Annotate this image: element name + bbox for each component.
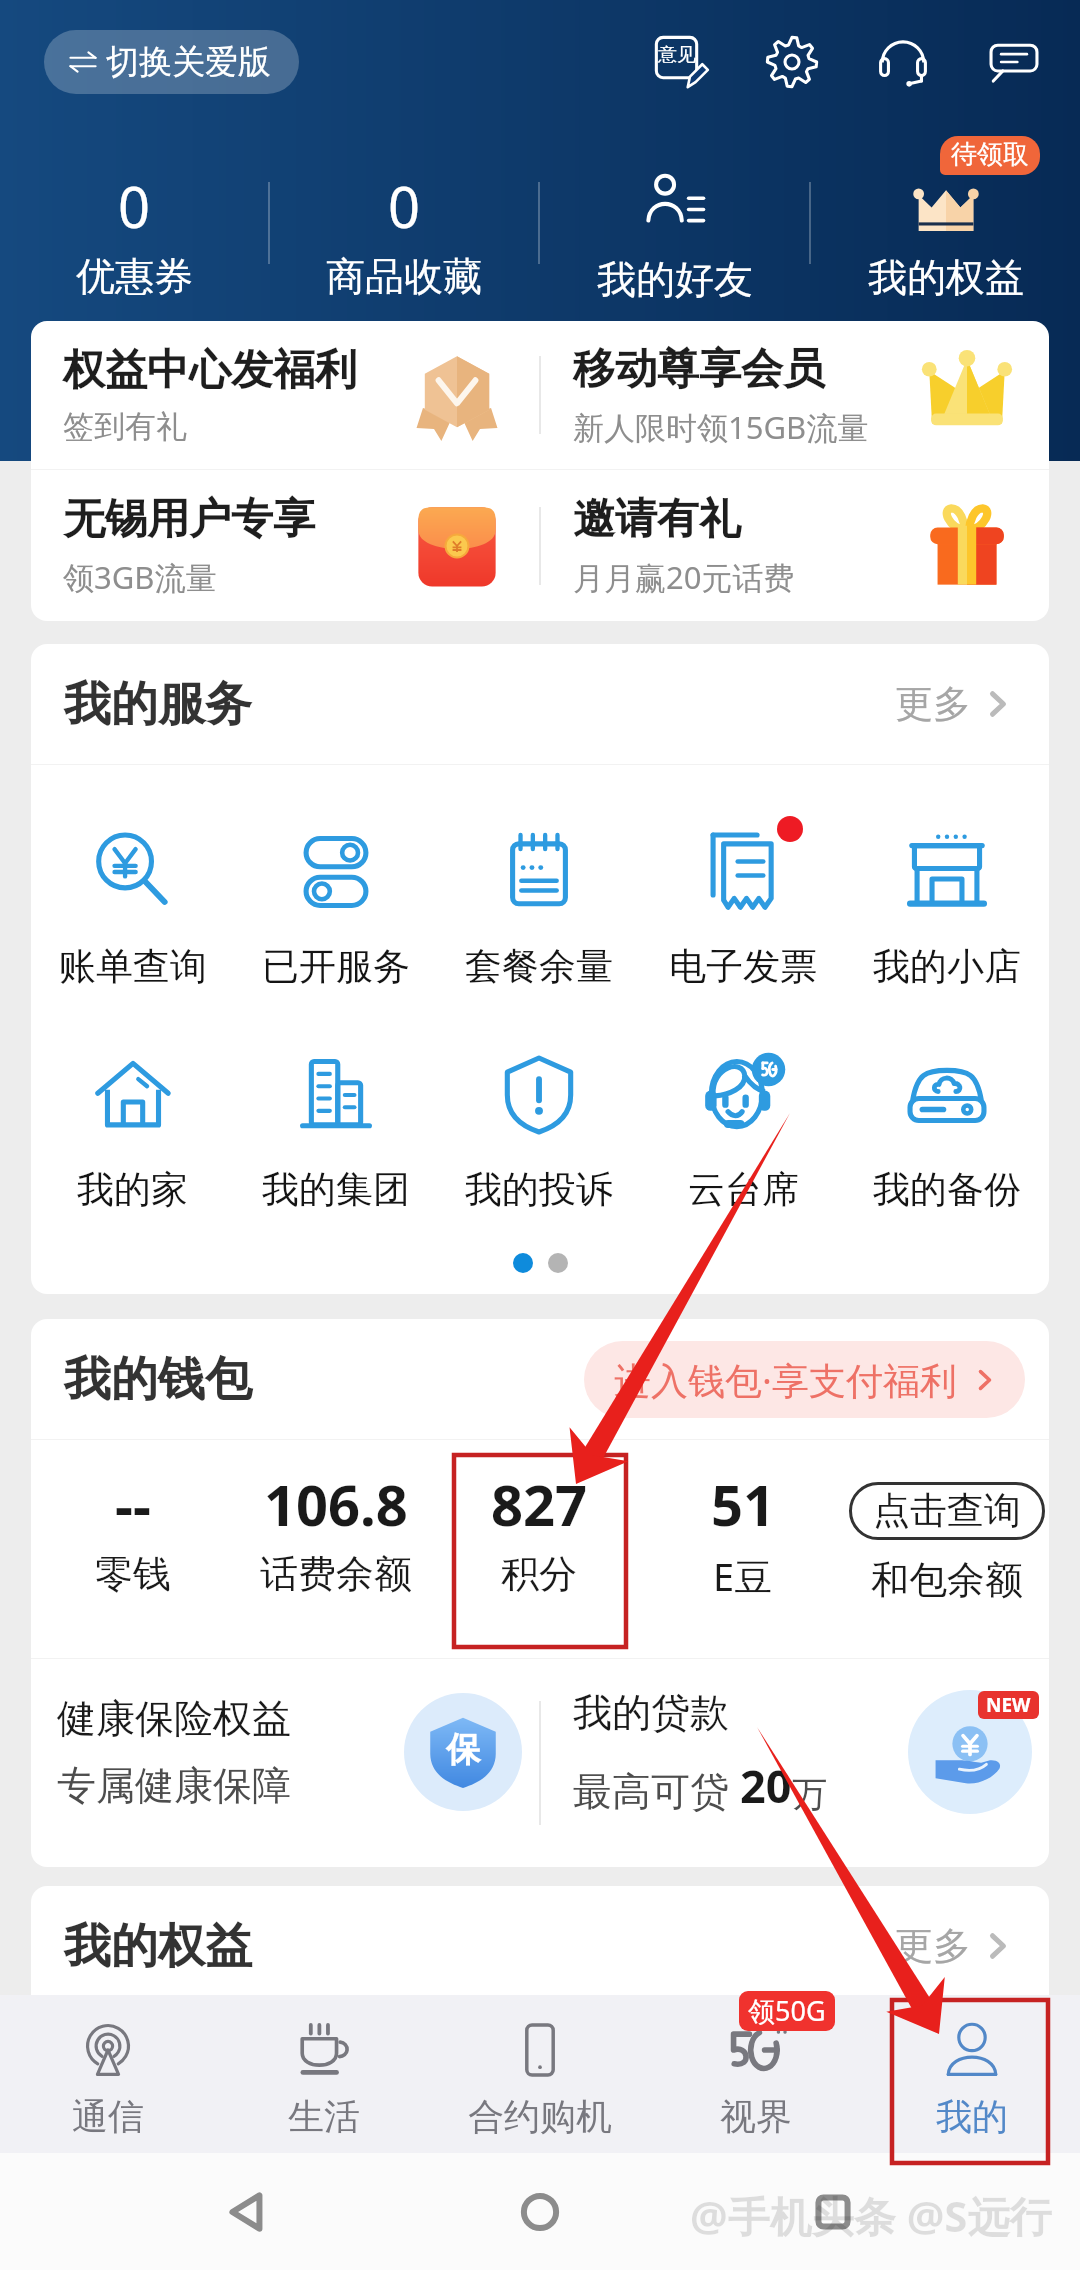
button[interactable]: 移动尊享会员 — [541, 321, 1049, 469]
staticText: 827 — [491, 1466, 588, 1542]
staticText: 我的钱包 — [64, 1350, 252, 1409]
staticText: 商品收藏 — [326, 252, 482, 301]
button[interactable]: 客服 — [874, 33, 932, 91]
staticText: 账单查询 — [59, 943, 207, 990]
button[interactable]: 已开服务 — [234, 828, 437, 990]
button[interactable]: 意见反馈 — [652, 33, 710, 91]
button[interactable]: 电子发票 — [641, 828, 845, 990]
staticText: 月月赢20元话费 — [573, 556, 795, 598]
button[interactable]: 更多 — [887, 1914, 1023, 1978]
staticText: 最高可贷 — [573, 1763, 740, 1816]
button[interactable]: 最近任务 — [788, 2167, 878, 2257]
button[interactable]: 827 — [437, 1440, 641, 1598]
staticText: 待领取 — [951, 138, 1029, 171]
staticText: 意见 — [658, 43, 696, 67]
staticText: 生活 — [288, 2094, 360, 2139]
staticText: 健康保险权益 — [57, 1694, 291, 1743]
staticText: 优惠券 — [76, 252, 193, 301]
staticText: 0 — [118, 168, 151, 244]
button[interactable]: 邀请有礼 — [541, 470, 1049, 621]
button[interactable]: 设置 — [763, 33, 821, 91]
staticText: 进入钱包·享支付福利 — [614, 1354, 957, 1405]
staticText: 已开服务 — [262, 943, 410, 990]
staticText: 万 — [792, 1772, 827, 1816]
staticText: 51 — [711, 1466, 776, 1542]
button[interactable]: 无锡用户专享 — [31, 470, 539, 621]
staticText: 20 — [740, 1755, 792, 1816]
staticText: 我的 — [936, 2094, 1008, 2139]
staticText: 新人限时领15GB流量 — [573, 406, 869, 448]
staticText: 套餐余量 — [465, 943, 613, 990]
staticText: 我的投诉 — [465, 1166, 613, 1213]
staticText: 邀请有礼 — [573, 493, 741, 546]
staticText: 我的权益 — [868, 253, 1024, 302]
button[interactable]: 切换关爱版 — [44, 30, 299, 94]
staticText: 更多 — [895, 1922, 971, 1970]
staticText: 无锡用户专享 — [63, 493, 315, 546]
button[interactable]: 套餐余量 — [437, 828, 641, 990]
staticText: 积分 — [501, 1550, 577, 1598]
button[interactable]: 更多 — [887, 672, 1023, 736]
button[interactable]: 主页 — [495, 2167, 585, 2257]
button[interactable]: 健康保险权益 — [31, 1659, 539, 1867]
staticText: 领50G — [748, 1992, 826, 2029]
staticText: 合约购机 — [468, 2094, 612, 2139]
button[interactable]: 云台席 — [641, 1051, 845, 1213]
staticText: @手机头条 @S远行 — [690, 2187, 1052, 2244]
button[interactable]: 我的贷款 — [541, 1659, 1049, 1867]
button[interactable]: 51 — [641, 1440, 845, 1602]
staticText: 领3GB流量 — [63, 556, 217, 598]
staticText: 我的好友 — [597, 255, 753, 304]
button[interactable]: 通信 — [0, 1995, 216, 2153]
staticText: 0 — [388, 168, 421, 244]
staticText: 我的集团 — [262, 1166, 410, 1213]
staticText: -- — [115, 1466, 151, 1542]
staticText: 电子发票 — [669, 943, 817, 990]
staticText: 我的小店 — [873, 943, 1021, 990]
staticText: 我的权益 — [64, 1917, 252, 1976]
staticText: 我的贷款 — [573, 1688, 729, 1737]
button[interactable]: 我的备份 — [845, 1051, 1049, 1213]
button[interactable]: 领50G — [648, 1995, 864, 2153]
button[interactable]: -- — [31, 1440, 234, 1598]
staticText: 零钱 — [95, 1550, 171, 1598]
staticText: 权益中心发福利 — [63, 344, 357, 397]
staticText: 话费余额 — [260, 1550, 412, 1598]
button[interactable]: 我的投诉 — [437, 1051, 641, 1213]
button[interactable]: 生活 — [216, 1995, 432, 2153]
staticText: 视界 — [720, 2094, 792, 2139]
staticText: 我的服务 — [64, 675, 252, 734]
button[interactable]: 权益中心发福利 — [31, 321, 539, 469]
staticText: 签到有礼 — [63, 407, 187, 446]
staticText: NEW — [986, 1692, 1031, 1718]
staticText: 保 — [446, 1728, 480, 1771]
button[interactable]: 点击查询 — [845, 1440, 1049, 1604]
staticText: 106.8 — [264, 1466, 408, 1542]
button[interactable]: 106.8 — [234, 1440, 437, 1598]
button[interactable]: 0 — [270, 124, 538, 321]
staticText: 更多 — [895, 680, 971, 728]
button[interactable]: 进入钱包·享支付福利 — [584, 1341, 1025, 1418]
staticText: 通信 — [72, 2094, 144, 2139]
staticText: 点击查询 — [873, 1487, 1021, 1534]
button[interactable]: 我的家 — [31, 1051, 234, 1213]
staticText: E豆 — [713, 1550, 773, 1602]
staticText: 专属健康保障 — [57, 1761, 291, 1810]
staticText: 和包余额 — [871, 1556, 1023, 1604]
button[interactable]: 我的小店 — [845, 828, 1049, 990]
button[interactable]: 我的 — [864, 1995, 1080, 2153]
staticText: 云台席 — [688, 1166, 799, 1213]
staticText: 我的家 — [77, 1166, 188, 1213]
staticText: 我的备份 — [873, 1166, 1021, 1213]
button[interactable]: 合约购机 — [432, 1995, 648, 2153]
button[interactable]: 消息 — [985, 33, 1043, 91]
staticText: 移动尊享会员 — [573, 343, 825, 396]
staticText: 切换关爱版 — [106, 41, 271, 83]
button[interactable]: 0 — [0, 124, 268, 321]
button[interactable]: 账单查询 — [31, 828, 234, 990]
button[interactable]: 待领取 — [811, 124, 1080, 321]
button[interactable]: 返回 — [203, 2167, 293, 2257]
button[interactable]: 我的好友 — [540, 124, 809, 321]
button[interactable]: 我的集团 — [234, 1051, 437, 1213]
